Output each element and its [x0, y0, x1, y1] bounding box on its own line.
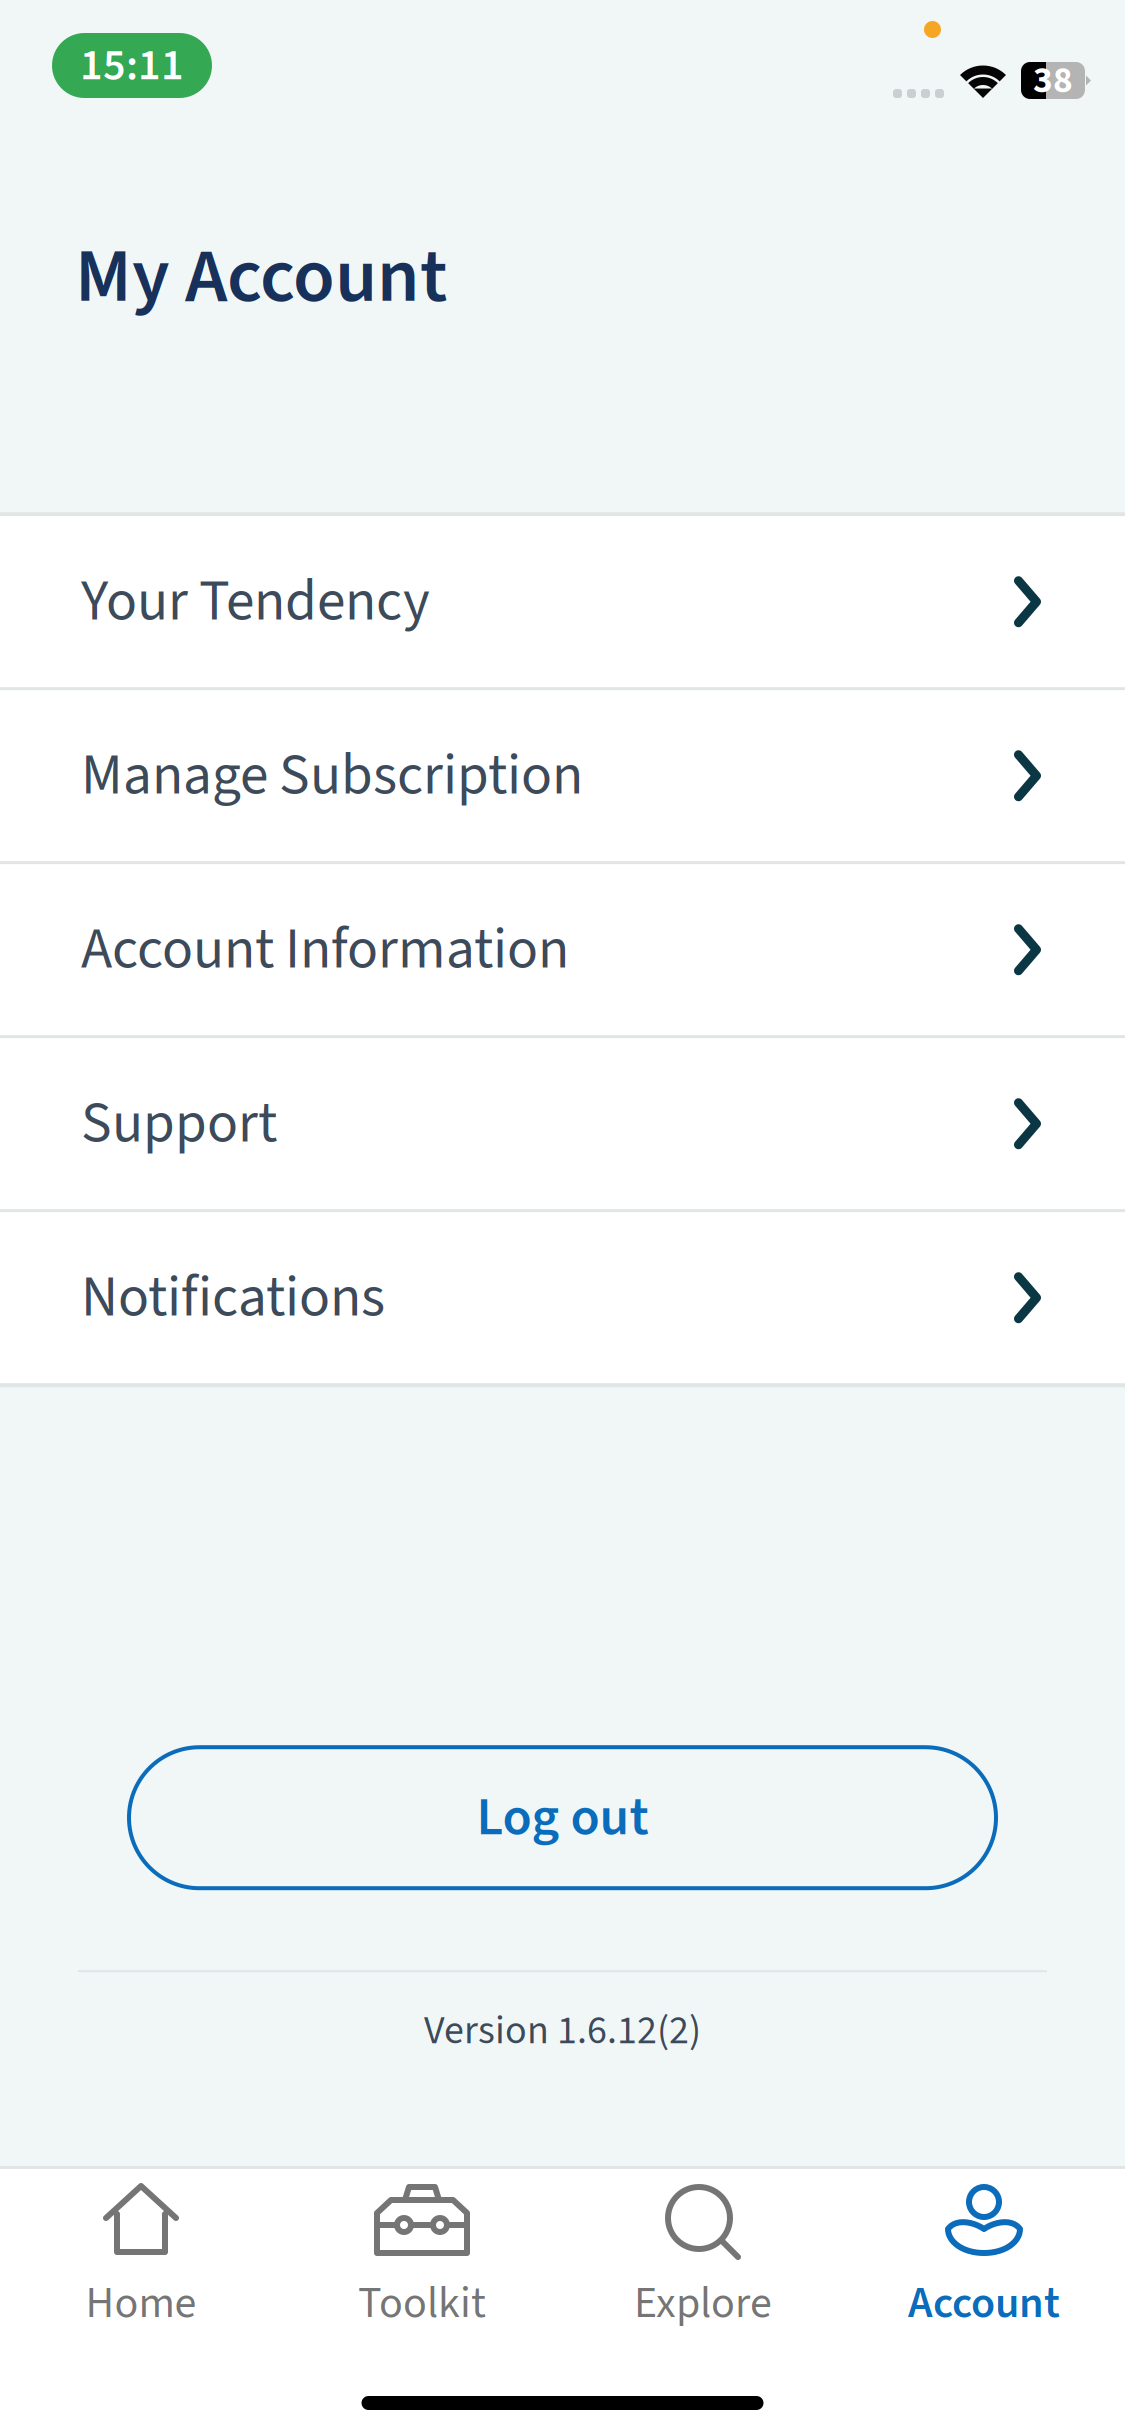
staticText: Version 1.6.12(2): [424, 2002, 701, 2059]
staticText: Explore: [634, 2272, 772, 2335]
staticText: 15:11: [80, 34, 184, 97]
button[interactable]: Your Tendency: [0, 516, 1125, 687]
staticText: Account: [908, 2272, 1060, 2335]
button[interactable]: Account Information: [0, 864, 1125, 1035]
button[interactable]: Home: [0, 2169, 281, 2337]
staticText: Account Information: [81, 909, 569, 990]
button[interactable]: Account: [843, 2169, 1124, 2337]
staticText: Support: [81, 1083, 277, 1164]
button[interactable]: Support: [0, 1038, 1125, 1209]
button[interactable]: Notifications: [0, 1212, 1125, 1383]
button[interactable]: Manage Subscription: [0, 690, 1125, 861]
button[interactable]: Explore: [562, 2169, 843, 2337]
staticText: Home: [85, 2272, 196, 2335]
button[interactable]: Toolkit: [281, 2169, 562, 2337]
staticText: 38: [1033, 54, 1073, 107]
staticText: Toolkit: [358, 2272, 486, 2335]
staticText: Your Tendency: [81, 561, 430, 642]
staticText: My Account: [75, 223, 447, 331]
button[interactable]: Log out: [129, 1747, 996, 1888]
staticText: Log out: [476, 1780, 648, 1856]
staticText: Manage Subscription: [81, 735, 583, 816]
staticText: Notifications: [81, 1257, 385, 1338]
